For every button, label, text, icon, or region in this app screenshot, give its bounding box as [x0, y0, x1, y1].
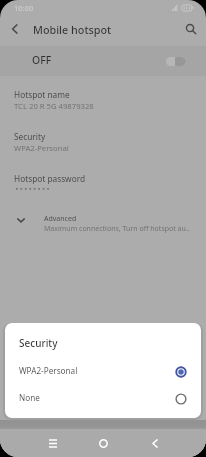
staticText: Hotspot name [14, 89, 70, 100]
button[interactable]: Search [176, 14, 206, 44]
button[interactable]: None [5, 384, 201, 411]
staticText: Maximum connections, Turn off hotspot au… [44, 224, 190, 234]
staticText: OFF [32, 53, 52, 67]
staticText: 10:00 [14, 3, 34, 13]
staticText: Advanced [44, 214, 77, 224]
staticText: Mobile hotspot [33, 22, 112, 37]
button[interactable]: Hotspot name [0, 76, 206, 118]
button[interactable]: Security [0, 118, 206, 160]
button[interactable]: Advanced [0, 202, 206, 244]
staticText: None [19, 392, 40, 403]
button[interactable]: Home [78, 429, 129, 457]
button[interactable]: Back [0, 14, 30, 44]
staticText: Security [14, 131, 46, 142]
button[interactable]: WPA2-Personal [5, 357, 201, 384]
staticText: TCL 20 R 5G 49879328 [14, 101, 94, 111]
staticText: WPA2-Personal [19, 365, 78, 376]
staticText: WPA2-Personal [14, 143, 69, 153]
staticText: Hotspot password [14, 173, 86, 184]
button[interactable]: OFF [0, 46, 206, 76]
button[interactable]: Hotspot password [0, 160, 206, 202]
staticText: Security [19, 336, 58, 350]
button[interactable]: Recent apps [27, 429, 78, 457]
button[interactable]: Back [129, 429, 180, 457]
